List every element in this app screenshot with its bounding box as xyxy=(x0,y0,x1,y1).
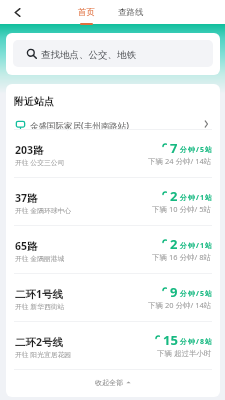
button[interactable]: 金盛国际家居(丰州南路站) xyxy=(6,117,220,132)
staticText: 15 xyxy=(163,331,178,349)
staticText: 二环2号线 xyxy=(15,335,64,349)
button[interactable]: 首页 xyxy=(78,7,95,25)
staticText: 203路 xyxy=(15,143,44,157)
button[interactable]: Back xyxy=(12,7,23,18)
staticText: 收起全部 xyxy=(95,378,123,387)
staticText: 开往 公交三公司 xyxy=(15,158,65,167)
staticText: 分钟/5站 xyxy=(180,145,213,155)
button[interactable]: 查路线 xyxy=(118,7,144,18)
staticText: 下辆 24 分钟/ 14站 xyxy=(148,156,212,166)
staticText: 金盛国际家居(丰州南路站) xyxy=(30,120,129,132)
staticText: 开往 金隅环球中心 xyxy=(15,206,72,215)
staticText: 查找地点、公交、地铁 xyxy=(41,49,136,61)
staticText: 开往 新华西街站 xyxy=(15,302,65,311)
staticText: 分钟/1站 xyxy=(180,193,213,203)
staticText: 分钟/1站 xyxy=(180,241,213,251)
staticText: 开往 金隅丽港城 xyxy=(15,254,65,263)
staticText: 37路 xyxy=(15,191,38,205)
button[interactable]: 查找地点、公交、地铁 xyxy=(13,40,213,67)
staticText: 下辆 超过半小时 xyxy=(157,348,212,358)
button[interactable]: 203路 xyxy=(6,129,220,177)
staticText: 二环1号线 xyxy=(15,287,64,301)
staticText: 7 xyxy=(170,139,178,157)
staticText: 分钟/8站 xyxy=(180,337,213,347)
staticText: 开往 阳光宜居花园 xyxy=(15,350,72,359)
staticText: 下辆 16 分钟/ 8站 xyxy=(152,252,212,262)
staticText: 65路 xyxy=(15,239,38,253)
staticText: 2 xyxy=(170,187,178,205)
staticText: 附近站点 xyxy=(14,95,54,108)
button[interactable]: 65路 xyxy=(6,225,220,273)
button[interactable]: 二环2号线 xyxy=(6,321,220,369)
staticText: 下辆 10 分钟/ 5站 xyxy=(152,204,212,214)
staticText: 2 xyxy=(170,235,178,253)
staticText: 首页 xyxy=(78,7,95,18)
button[interactable]: 37路 xyxy=(6,177,220,225)
staticText: 分钟/5站 xyxy=(180,289,213,299)
staticText: 9 xyxy=(170,283,178,301)
button[interactable]: 二环1号线 xyxy=(6,273,220,321)
staticText: 下辆 20 分钟/ 14站 xyxy=(148,300,212,310)
button[interactable]: 收起全部 xyxy=(6,369,220,397)
